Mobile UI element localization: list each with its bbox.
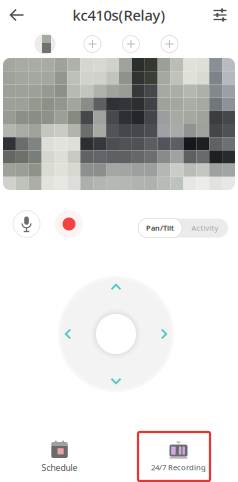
button[interactable]: Record [55, 210, 83, 238]
button[interactable]: Pan right [154, 322, 174, 346]
button[interactable]: Add device [122, 35, 139, 52]
button[interactable]: Pan left [58, 322, 78, 346]
button[interactable]: Schedule [0, 430, 119, 482]
button[interactable]: Add device [84, 35, 101, 52]
button[interactable]: Back [2, 0, 32, 30]
button[interactable]: Camera kc410s [34, 33, 55, 54]
staticText: Schedule [41, 462, 77, 473]
staticText: Activity [191, 223, 218, 233]
staticText: Pan/Tilt [146, 223, 174, 233]
button[interactable]: Activity [182, 218, 228, 237]
button[interactable]: Tilt up [104, 277, 128, 297]
button[interactable]: Pan/Tilt [138, 218, 182, 237]
button[interactable]: Tilt down [104, 371, 128, 391]
button[interactable]: Add device [161, 35, 178, 52]
staticText: 24/7 Recording [151, 462, 206, 472]
button[interactable]: 24/7 Recording [119, 430, 238, 482]
staticText: kc410s(Relay) [72, 5, 165, 25]
button[interactable]: Microphone [13, 210, 40, 237]
button[interactable]: Settings [206, 1, 234, 29]
